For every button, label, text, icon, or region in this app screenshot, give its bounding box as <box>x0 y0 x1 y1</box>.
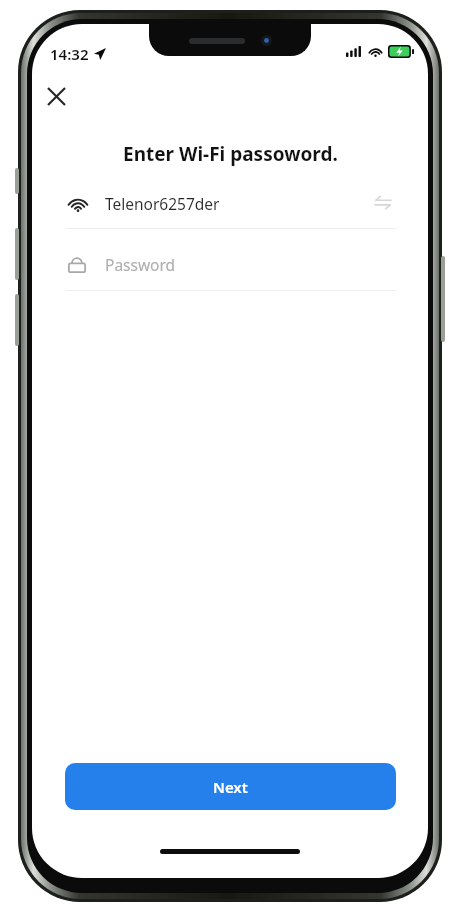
button[interactable]: Telenor6257der <box>66 182 396 224</box>
button[interactable]: Password <box>66 243 396 285</box>
staticText: Next <box>213 777 248 797</box>
staticText: 14:32 <box>50 44 89 64</box>
button[interactable]: Close <box>34 74 78 118</box>
staticText: Enter Wi-Fi passoword. <box>123 141 338 167</box>
button[interactable]: Next <box>65 763 396 810</box>
staticText: Password <box>105 254 176 275</box>
staticText: Telenor6257der <box>105 193 220 214</box>
button[interactable]: Change network <box>370 190 396 216</box>
